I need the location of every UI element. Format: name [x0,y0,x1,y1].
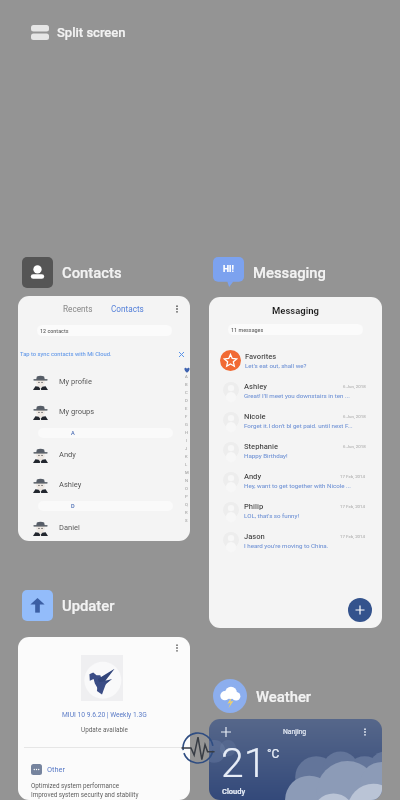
staticText: Update available [81,726,128,734]
staticText: 17 Feb, 2014 [340,504,366,509]
button[interactable]: More options [172,304,182,314]
staticText: C [185,390,188,398]
button[interactable]: Add city [209,719,382,800]
staticText: Contacts [62,264,122,281]
staticText: L [185,462,188,470]
staticText: D [71,503,75,510]
staticText: Stephanie [244,442,343,451]
staticText: MIUI 10 9.6.20 | Weekly 1.3G [62,711,147,719]
staticText: Great! I'll meet you downstairs in ten .… [244,392,350,399]
button[interactable]: Add city [221,727,231,737]
staticText: K [185,454,188,462]
button[interactable]: Jason [223,525,366,555]
button[interactable]: 12 contacts [37,325,172,336]
button[interactable]: HI! [213,257,326,288]
staticText: Let's eat out, shall we? [245,362,307,369]
staticText: My groups [59,407,95,416]
staticText: Hey, want to get together with Nicole ..… [244,482,351,489]
button[interactable]: Daniel [32,512,190,541]
staticText: S [185,518,188,526]
button[interactable]: Nicole [223,405,366,435]
staticText: Andy [59,450,76,459]
button[interactable]: Ashley [32,469,190,499]
staticText: H [185,430,188,438]
staticText: Q [185,502,188,510]
staticText: Daniel [59,523,80,532]
button[interactable]: Other [31,764,65,775]
staticText: Ashley [59,480,82,489]
staticText: Weather [256,688,312,705]
button[interactable]: Andy [223,465,366,495]
staticText: Nanjing [283,728,307,736]
staticText: 17 Feb, 2014 [340,474,366,479]
staticText: Favorites [245,352,277,361]
staticText: Improved system security and stability [31,791,139,798]
staticText: 6 Jun, 2018 [343,444,366,449]
button[interactable]: Andy [32,439,190,469]
button[interactable]: More options [18,637,190,800]
staticText: R [185,510,188,518]
button[interactable]: Split screen [31,25,126,40]
staticText: 21 [221,739,267,787]
staticText: G [185,422,188,430]
staticText: Andy [244,472,340,481]
staticText: I heard you're moving to China. [244,542,329,549]
staticText: E [185,406,188,414]
button[interactable]: Favorites [220,345,382,375]
button[interactable]: Contacts [22,257,122,288]
staticText: Happy Birthday! [244,452,288,459]
staticText: M [185,470,189,478]
staticText: LOL, that's so funny! [244,512,300,519]
button[interactable]: Tap to sync contacts with Mi Cloud. [20,348,184,360]
staticText: Updater [62,597,115,614]
staticText: Messaging [272,305,320,316]
staticText: My profile [59,377,92,386]
staticText: B [185,382,188,390]
staticText: Split screen [57,25,126,40]
button[interactable]: Updater [22,590,115,621]
button[interactable]: 11 messages [228,324,363,335]
staticText: HI! [223,264,234,274]
staticText: I [186,438,188,446]
staticText: 12 contacts [40,328,69,334]
staticText: A [185,374,188,382]
button[interactable]: My groups [32,396,190,426]
staticText: Recents [63,304,93,314]
staticText: 6 Jun, 2018 [343,384,366,389]
button[interactable]: Recents [18,296,190,541]
staticText: Messaging [253,264,326,281]
button[interactable]: New message [348,598,372,622]
staticText: Nicole [244,412,343,421]
staticText: F [185,414,188,422]
staticText: Optimized system performance [31,782,120,789]
button[interactable]: Weather menu [360,727,370,737]
staticText: Other [47,765,65,774]
button[interactable]: Messaging [209,297,382,628]
staticText: Cloudy [222,787,246,796]
staticText: Tap to sync contacts with Mi Cloud. [20,351,112,358]
staticText: 11 messages [231,327,264,333]
staticText: A [71,430,75,437]
button[interactable]: Philip [223,495,366,525]
staticText: O [185,486,188,494]
button[interactable]: Weather [213,679,312,713]
staticText: Jason [244,532,340,541]
staticText: 17 Feb, 2014 [340,534,366,539]
button[interactable]: More options [172,643,182,653]
button[interactable]: My profile [32,366,190,396]
staticText: P [185,494,188,502]
staticText: D [185,398,188,406]
button[interactable]: Stephanie [223,435,366,465]
staticText: °C [267,747,280,761]
staticText: J [185,446,188,454]
staticText: Ashley [244,382,343,391]
button[interactable]: Ashley [223,375,366,405]
staticText: 6 Jun, 2018 [343,414,366,419]
staticText: N [185,478,188,486]
staticText: Contacts [111,304,144,314]
staticText: Forget it.I don't bl get paid. until nex… [244,422,353,429]
staticText: Philip [244,502,340,511]
